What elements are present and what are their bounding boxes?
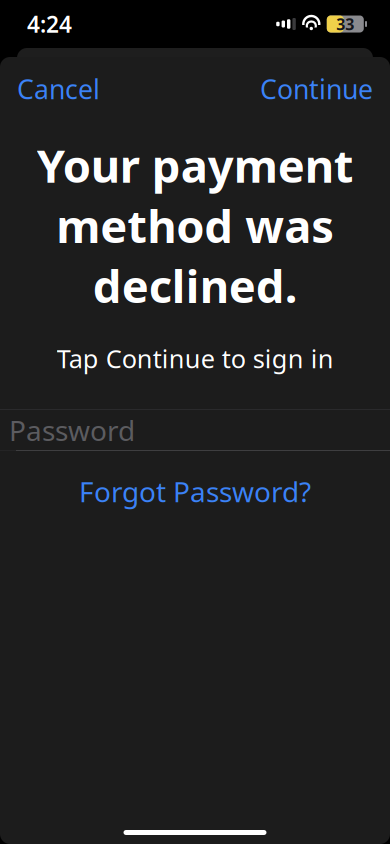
button[interactable]: Password <box>0 410 390 450</box>
staticText: Continue <box>260 71 373 107</box>
button[interactable]: Forgot Password? <box>0 459 390 524</box>
staticText: 4:24 <box>27 9 72 39</box>
staticText: Password <box>9 411 135 449</box>
staticText: Your payment method was declined. <box>36 135 353 316</box>
button[interactable]: Continue <box>243 61 390 117</box>
staticText: Tap Continue to sign in <box>56 342 333 375</box>
staticText: 33 <box>336 13 354 35</box>
staticText: Forgot Password? <box>79 473 311 510</box>
button[interactable]: Cancel <box>0 61 117 117</box>
staticText: Cancel <box>17 71 100 107</box>
